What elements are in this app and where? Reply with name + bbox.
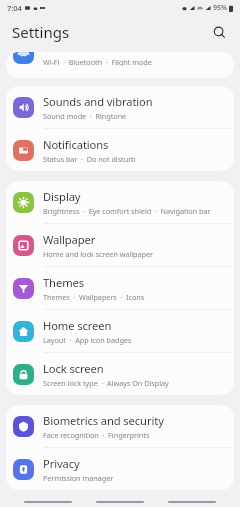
button[interactable]: Search	[208, 21, 230, 43]
button[interactable]: Display	[6, 181, 234, 223]
staticText: Sounds and vibration	[43, 94, 153, 109]
button[interactable]: Notifications	[6, 129, 234, 171]
button[interactable]: Biometrics and security	[6, 405, 234, 447]
staticText: Biometrics and security	[43, 413, 164, 428]
button[interactable]: Sounds and vibration	[6, 86, 234, 128]
staticText: Wi-Fi · Bluetooth · Flight mode	[43, 57, 152, 66]
staticText: Layout · App icon badges	[43, 335, 132, 345]
staticText: Wallpaper	[43, 232, 96, 247]
staticText: Sound mode · Ringtone	[43, 111, 127, 121]
button[interactable]: Themes	[6, 267, 234, 309]
button[interactable]: Wallpaper	[6, 224, 234, 266]
staticText: Privacy	[43, 456, 80, 471]
staticText: Display	[43, 189, 81, 204]
button[interactable]: Lock screen	[6, 353, 234, 395]
staticText: 95%	[213, 3, 227, 13]
staticText: Themes	[43, 275, 84, 290]
staticText: Face recognition · Fingerprints	[43, 430, 150, 440]
staticText: Status bar · Do not disturb	[43, 154, 136, 164]
button[interactable]: Home screen	[6, 310, 234, 352]
staticText: Brightness · Eye comfort shield · Naviga…	[43, 206, 211, 216]
button[interactable]: Navigation	[24, 501, 72, 503]
staticText: 7:04	[7, 3, 22, 13]
staticText: Themes · Wallpapers · Icons	[43, 292, 145, 302]
staticText: Home and lock screen wallpaper	[43, 249, 154, 259]
staticText: Settings	[12, 22, 70, 42]
staticText: Lock screen	[43, 361, 104, 376]
staticText: Home screen	[43, 318, 112, 333]
button[interactable]: Navigation	[168, 501, 216, 503]
staticText: Screen lock type · Always On Display	[43, 378, 169, 388]
staticText: Permission manager	[43, 473, 114, 483]
button[interactable]: Privacy	[6, 448, 234, 490]
staticText: Notifications	[43, 137, 109, 152]
button[interactable]: Connections	[6, 52, 234, 66]
button[interactable]: Navigation	[96, 501, 144, 503]
